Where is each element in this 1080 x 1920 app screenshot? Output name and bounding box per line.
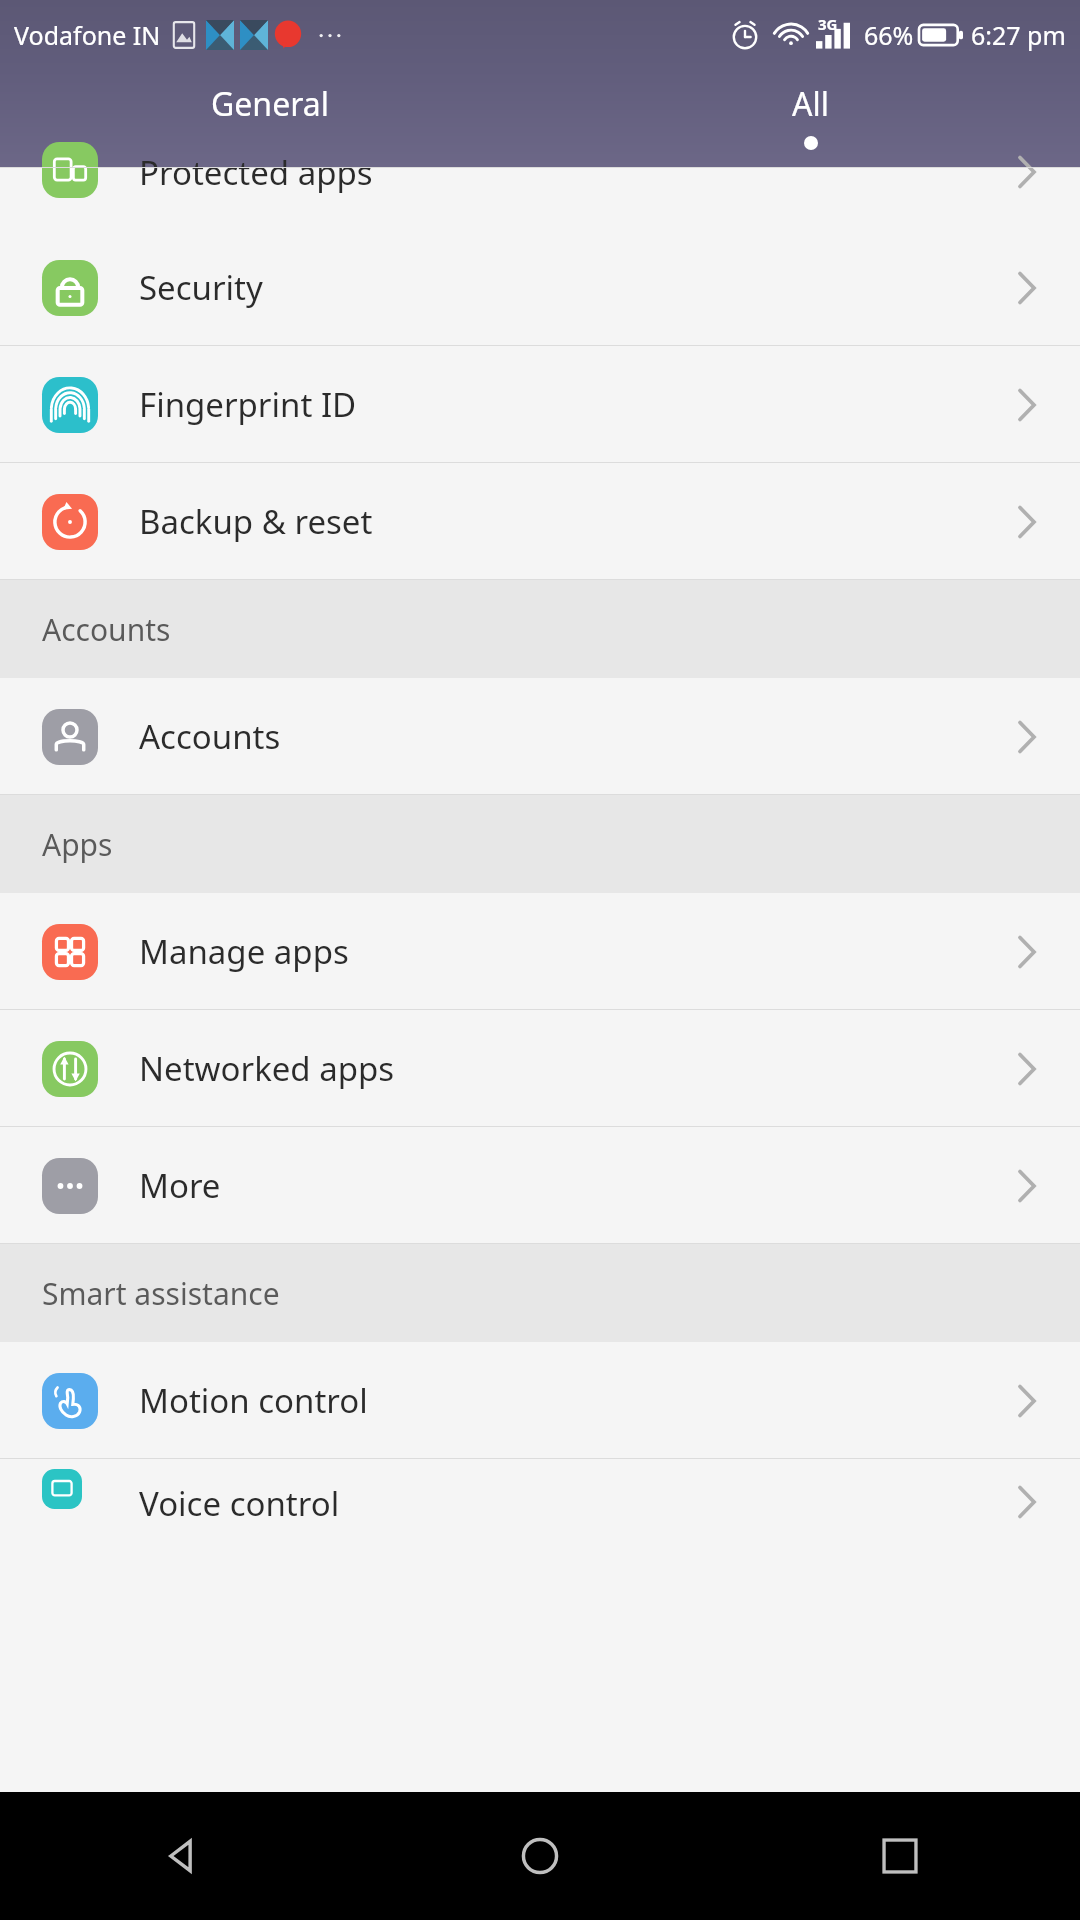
staticText: Accounts [42, 609, 171, 650]
button[interactable]: Security [0, 229, 1080, 346]
staticText: More [139, 1163, 221, 1208]
button[interactable]: General [0, 70, 540, 167]
button[interactable]: Motion control [0, 1342, 1080, 1459]
staticText: Vodafone IN [14, 18, 161, 52]
button[interactable]: Backup & reset [0, 463, 1080, 580]
staticText: Backup & reset [139, 499, 373, 544]
staticText: Voice control [139, 1481, 340, 1521]
staticText: Security [139, 265, 263, 310]
staticText: Accounts [139, 714, 281, 759]
staticText: Motion control [139, 1378, 368, 1423]
button[interactable]: Back [0, 1792, 360, 1920]
staticText: Manage apps [139, 929, 349, 974]
staticText: General [211, 82, 329, 126]
button[interactable]: More [0, 1127, 1080, 1244]
button[interactable]: Home [360, 1792, 720, 1920]
staticText: 3G [818, 14, 838, 34]
button[interactable]: Recent apps [720, 1792, 1080, 1920]
button[interactable]: Networked apps [0, 1010, 1080, 1127]
button[interactable]: Accounts [0, 678, 1080, 795]
staticText: 6:27 pm [971, 18, 1066, 52]
staticText: Protected apps [139, 150, 373, 195]
staticText: Fingerprint ID [139, 382, 357, 427]
staticText: All [792, 82, 829, 126]
button[interactable]: Fingerprint ID [0, 346, 1080, 463]
staticText: Apps [42, 824, 113, 865]
staticText: Smart assistance [42, 1273, 280, 1314]
button[interactable]: Manage apps [0, 893, 1080, 1010]
staticText: Networked apps [139, 1046, 395, 1091]
staticText: 66% [864, 18, 914, 52]
button[interactable]: All [540, 70, 1080, 167]
